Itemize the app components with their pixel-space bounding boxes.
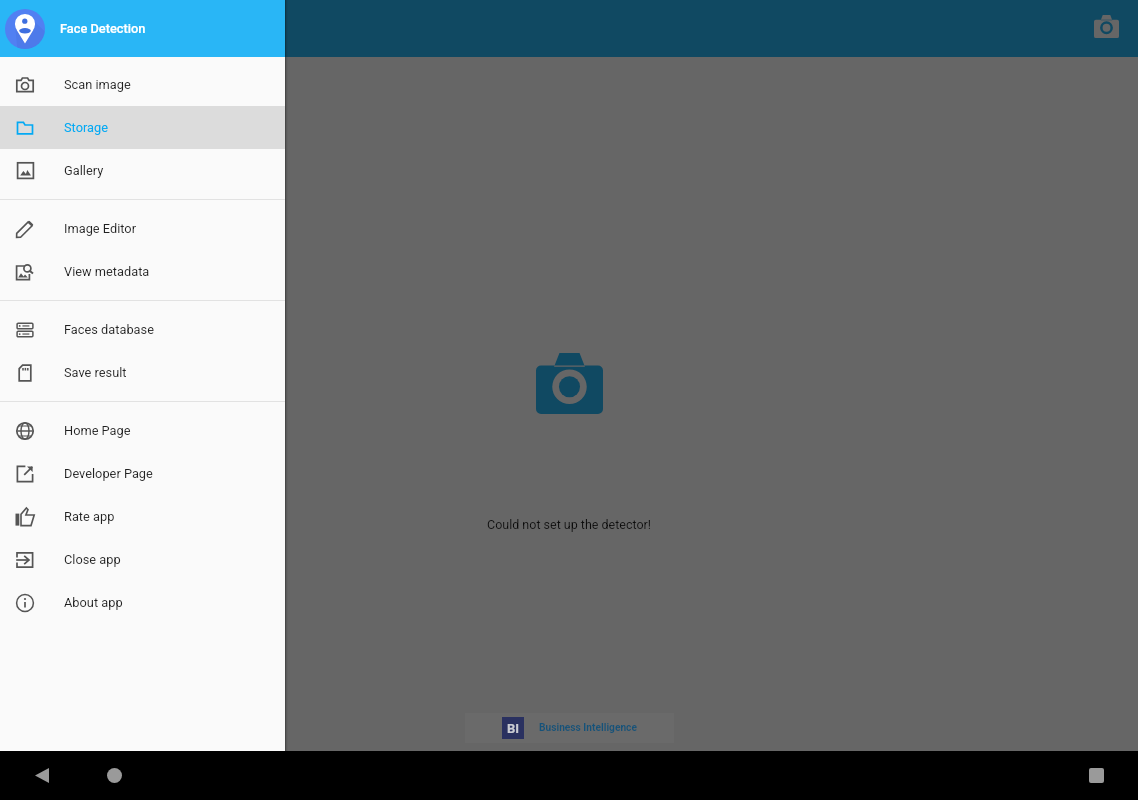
staticText: Gallery: [64, 163, 104, 178]
staticText: Business Intelligence: [539, 722, 637, 734]
staticText: Save result: [64, 365, 127, 380]
button[interactable]: Rate app: [0, 495, 285, 538]
staticText: Developer Page: [64, 466, 153, 481]
button[interactable]: Gallery: [0, 149, 285, 192]
button[interactable]: Image Editor: [0, 207, 285, 250]
staticText: Could not set up the detector!: [487, 517, 652, 532]
staticText: Scan image: [64, 77, 131, 92]
staticText: Face Detection: [60, 21, 146, 36]
staticText: Close app: [64, 552, 121, 567]
button[interactable]: View metadata: [0, 250, 285, 293]
button[interactable]: BI: [465, 713, 674, 743]
button[interactable]: Scan image: [0, 63, 285, 106]
button[interactable]: Faces database: [0, 308, 285, 351]
button[interactable]: Home Page: [0, 409, 285, 452]
button[interactable]: Recent apps: [1082, 751, 1110, 800]
button[interactable]: Home: [100, 751, 128, 800]
button[interactable]: Developer Page: [0, 452, 285, 495]
button[interactable]: About app: [0, 581, 285, 624]
button[interactable]: Back: [28, 751, 56, 800]
staticText: Storage: [64, 120, 108, 135]
button[interactable]: Take photo: [1082, 5, 1130, 53]
staticText: Image Editor: [64, 221, 136, 236]
button[interactable]: Face Detection: [0, 0, 285, 57]
button[interactable]: Save result: [0, 351, 285, 394]
staticText: Home Page: [64, 423, 131, 438]
staticText: View metadata: [64, 264, 150, 279]
staticText: About app: [64, 595, 123, 610]
button[interactable]: Storage: [0, 106, 285, 149]
staticText: BI: [507, 721, 520, 736]
staticText: Rate app: [64, 509, 115, 524]
button[interactable]: Close app: [0, 538, 285, 581]
staticText: Faces database: [64, 322, 154, 337]
